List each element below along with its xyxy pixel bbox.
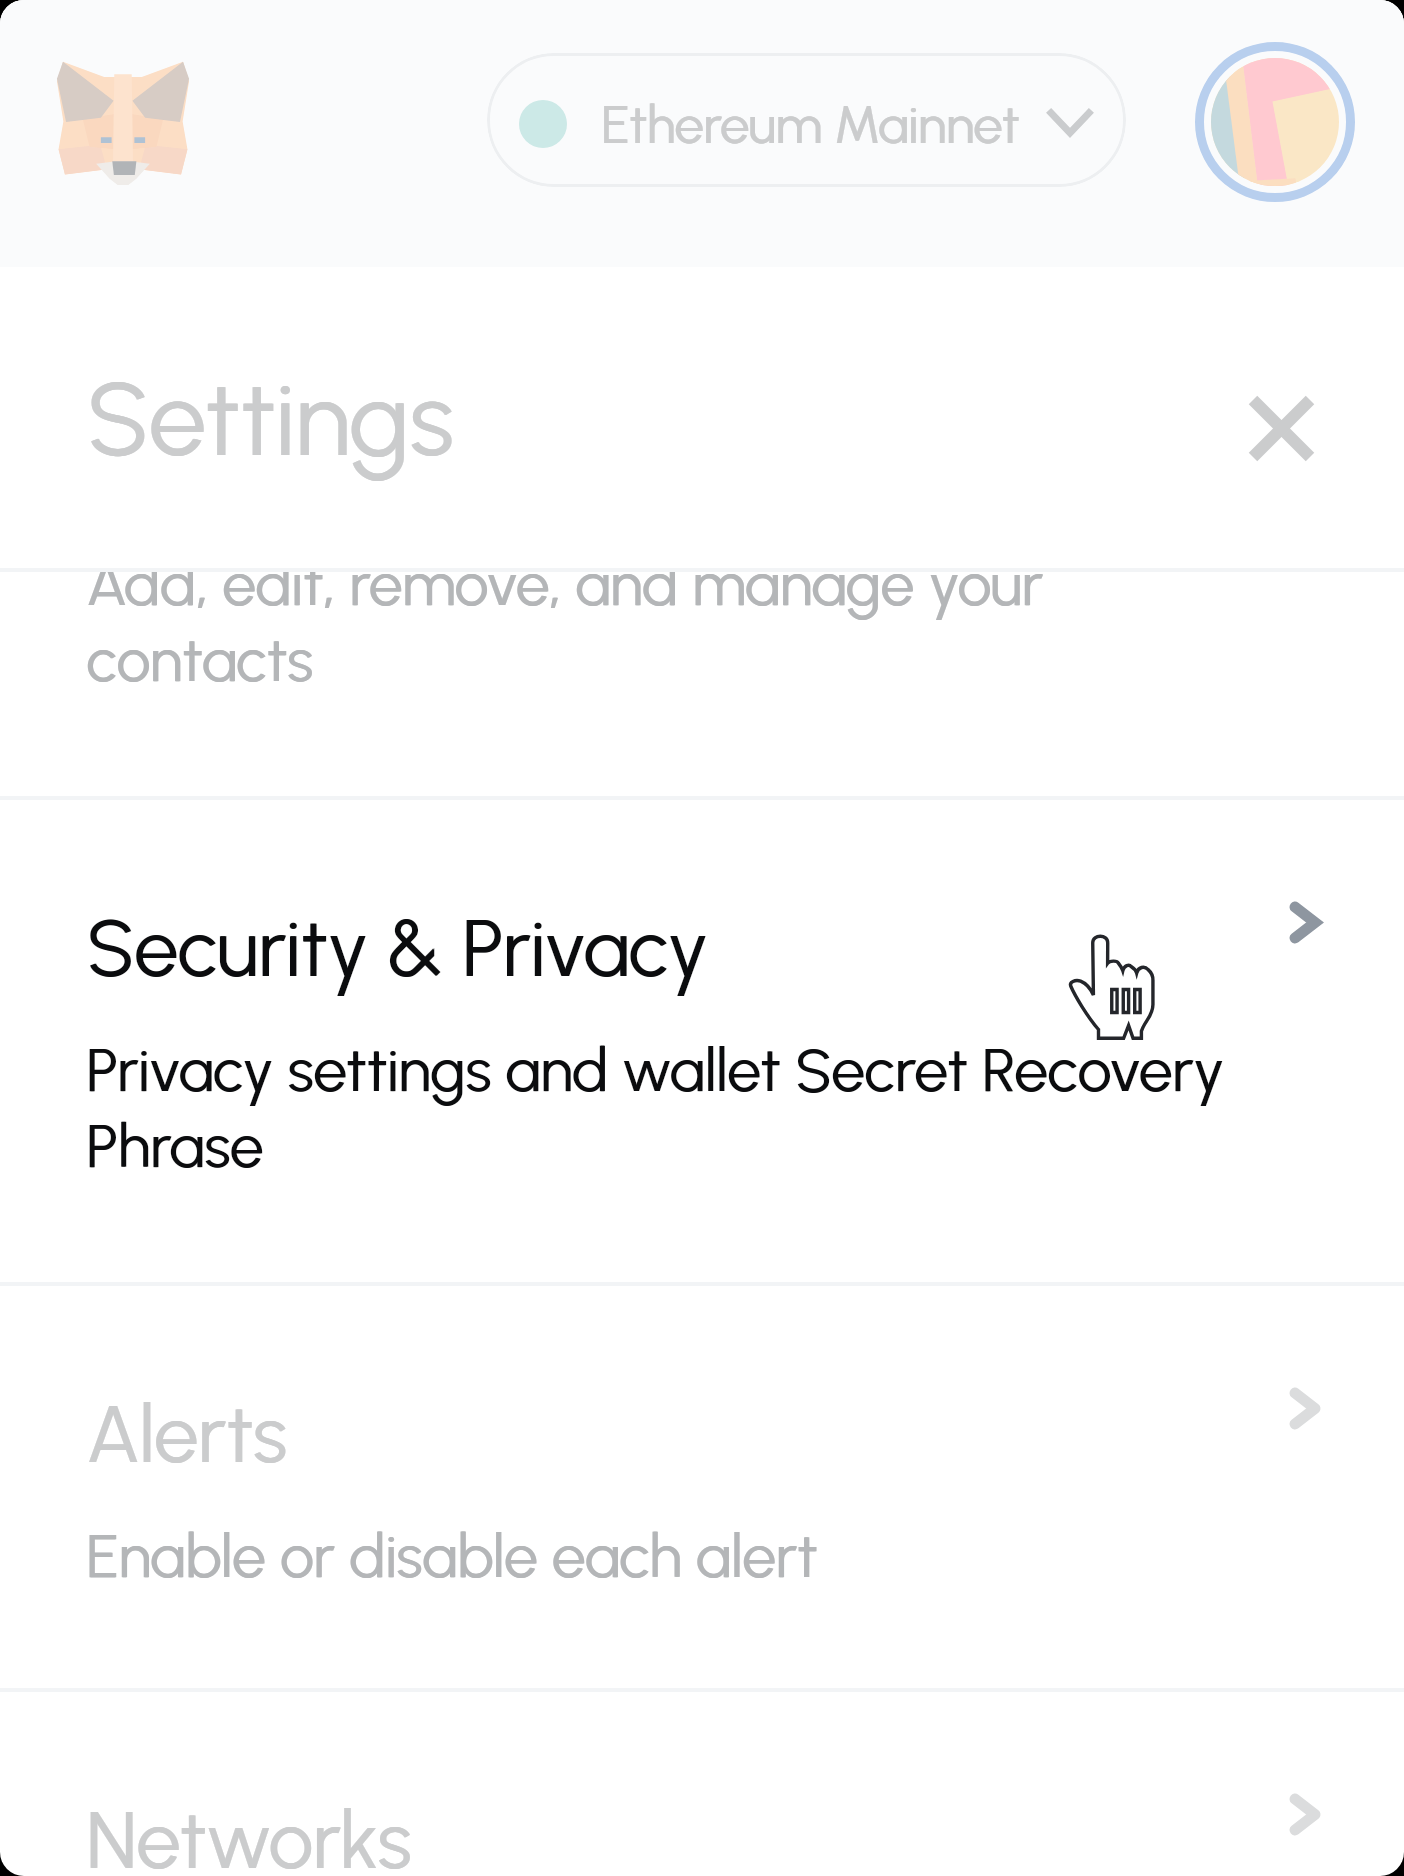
button[interactable]: Networks (0, 1692, 1404, 1876)
staticText: Settings (86, 357, 454, 481)
button[interactable]: Alerts (0, 1286, 1404, 1692)
staticText: Enable or disable each alert (86, 1517, 1246, 1593)
button[interactable]: Close settings (1231, 378, 1332, 479)
button[interactable]: Ethereum Mainnet (487, 53, 1126, 187)
button[interactable]: Account options (1195, 42, 1355, 202)
staticText: Privacy settings and wallet Secret Recov… (86, 1031, 1246, 1183)
staticText: Add, edit, remove, and manage your conta… (86, 545, 1246, 697)
staticText: Ethereum Mainnet (601, 94, 1020, 156)
staticText: Networks (86, 1793, 412, 1876)
staticText: Alerts (86, 1387, 287, 1482)
button[interactable]: Contacts (0, 314, 1404, 800)
staticText: Security & Privacy (86, 901, 708, 996)
button[interactable]: Security & Privacy (0, 800, 1404, 1286)
staticText: Contacts (86, 415, 398, 510)
